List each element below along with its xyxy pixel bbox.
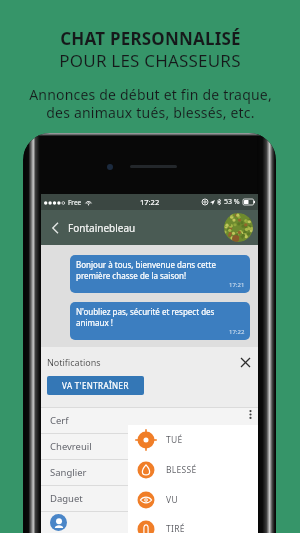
button[interactable] [41, 512, 258, 533]
button[interactable]: Chevreuil [41, 434, 258, 459]
button[interactable]: Close [237, 354, 253, 370]
staticText: Cerf [50, 414, 69, 427]
staticText: VU [166, 494, 178, 506]
staticText: Chevreuil [50, 440, 92, 453]
button[interactable]: VA T'ENTRAÎNER [47, 376, 144, 395]
staticText: Bonjour à tous, bienvenue dans cette pre… [76, 259, 216, 281]
staticText: TIRÉ [166, 523, 185, 533]
staticText: Fontainebleau [68, 221, 136, 235]
button[interactable]: Bonjour à tous, bienvenue dans cette pre… [70, 255, 250, 293]
button[interactable]: Cerf [41, 408, 258, 433]
button[interactable]: Back [45, 218, 64, 237]
staticText: POUR LES CHASSEURS [59, 49, 241, 72]
staticText: CHAT PERSONNALISÉ [60, 27, 241, 50]
button[interactable]: TUÉ [128, 425, 258, 455]
button[interactable]: Sanglier [41, 460, 258, 485]
button[interactable]: N'oubliez pas, sécurité et respect des a… [70, 302, 250, 340]
staticText: VA T'ENTRAÎNER [62, 380, 129, 391]
staticText: Notifications [47, 356, 101, 368]
staticText: Annonces de début et fin de traque, [29, 85, 272, 104]
staticText: 17:22 [229, 328, 245, 336]
button[interactable]: VU [128, 485, 258, 515]
staticText: Free [68, 198, 82, 207]
staticText: des animaux tués, blessés, etc. [46, 103, 255, 122]
staticText: BLESSÉ [166, 464, 197, 476]
button[interactable]: BLESSÉ [128, 455, 258, 485]
staticText: Sanglier [50, 466, 87, 479]
button[interactable]: More options [244, 408, 256, 420]
staticText: 17:22 [140, 197, 160, 207]
button[interactable]: Daguet [41, 486, 258, 511]
staticText: TUÉ [166, 434, 183, 446]
button[interactable]: TIRÉ [128, 515, 258, 533]
button[interactable]: Profile photo [224, 213, 253, 242]
staticText: 17:21 [229, 281, 245, 289]
staticText: 53 % [224, 197, 240, 207]
staticText: Daguet [50, 492, 83, 505]
staticText: N'oubliez pas, sécurité et respect des a… [76, 306, 215, 328]
